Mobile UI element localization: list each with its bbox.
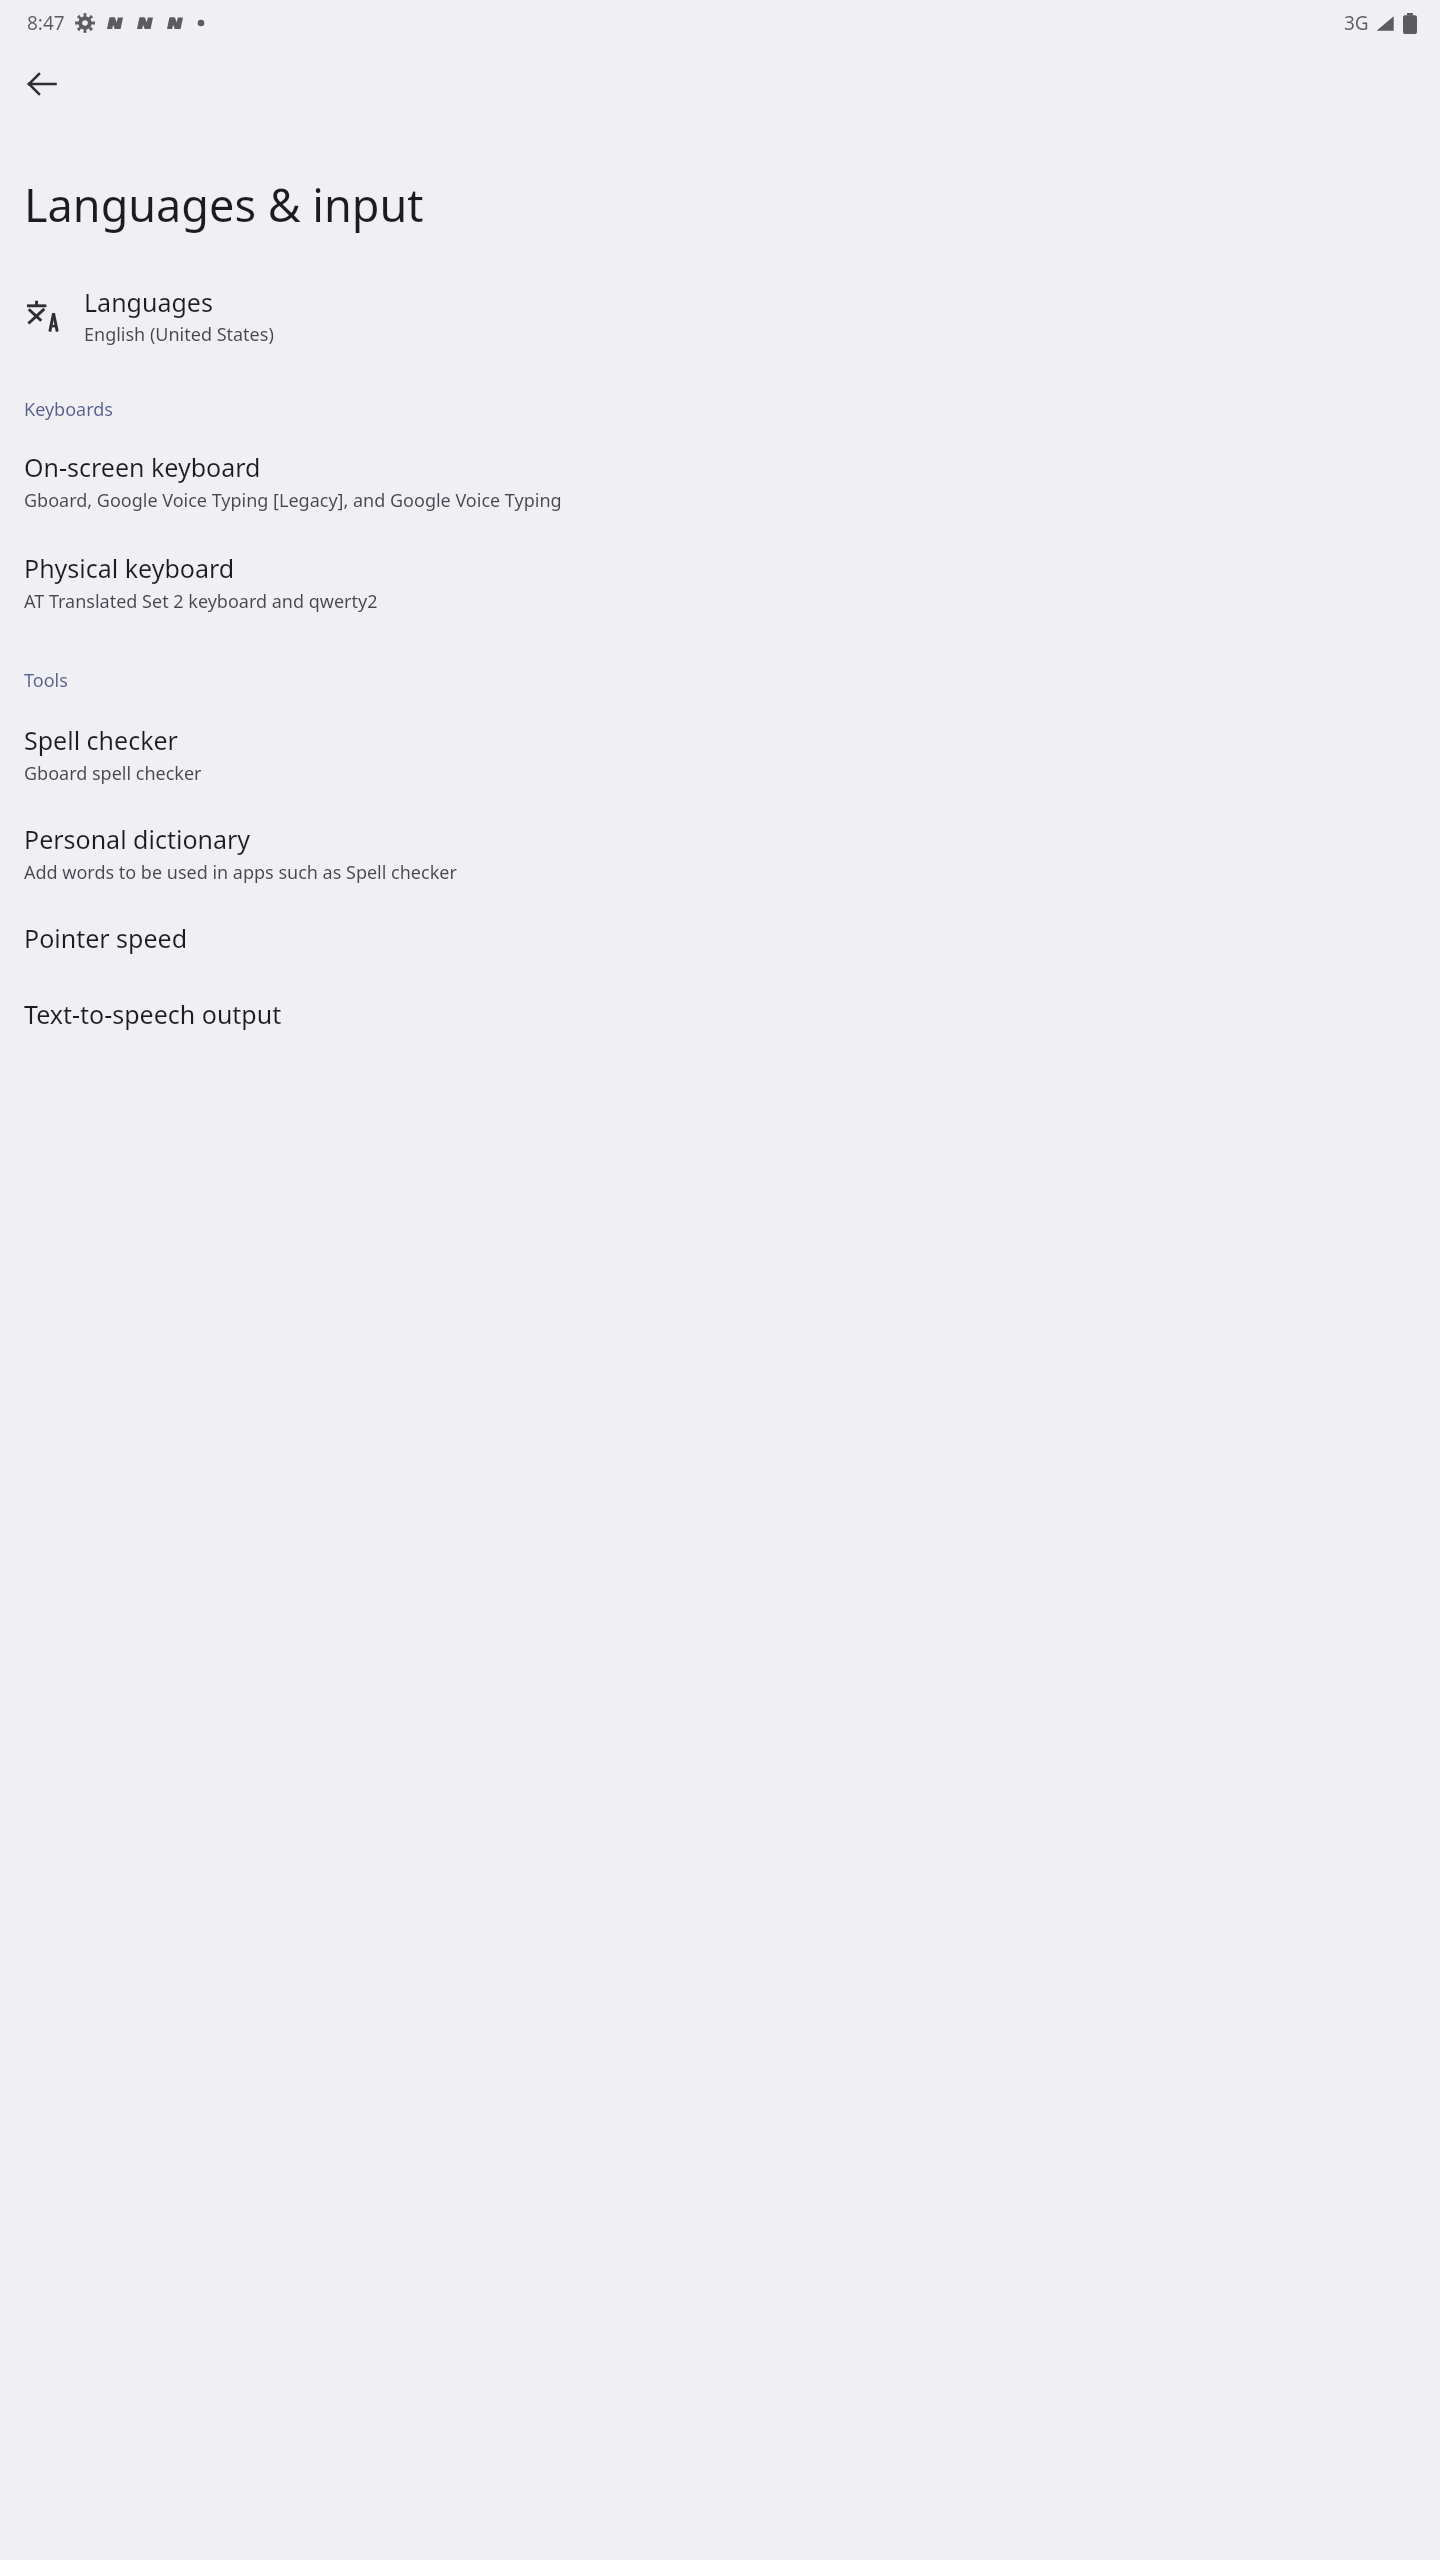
staticText: Pointer speed xyxy=(24,921,188,955)
staticText: Text-to-speech output xyxy=(24,997,282,1031)
staticText: 8:47 xyxy=(27,10,65,36)
staticText: Add words to be used in apps such as Spe… xyxy=(24,860,457,885)
staticText: Physical keyboard xyxy=(24,551,235,585)
staticText: Languages & input xyxy=(24,174,424,235)
staticText: Gboard spell checker xyxy=(24,761,202,786)
staticText: AT Translated Set 2 keyboard and qwerty2 xyxy=(24,589,378,614)
button[interactable]: Spell checker xyxy=(0,721,1440,788)
button[interactable]: Physical keyboard xyxy=(0,549,1440,616)
staticText: English (United States) xyxy=(84,322,274,347)
staticText: Keyboards xyxy=(24,397,113,422)
staticText: Personal dictionary xyxy=(24,822,251,856)
button[interactable]: Personal dictionary xyxy=(0,820,1440,887)
button[interactable]: Pointer speed xyxy=(0,919,1440,957)
button[interactable]: Back xyxy=(14,56,70,112)
staticText: On-screen keyboard xyxy=(24,450,261,484)
button[interactable]: On-screen keyboard xyxy=(0,448,1440,515)
button[interactable]: Text-to-speech output xyxy=(0,995,1440,1033)
staticText: Spell checker xyxy=(24,723,178,757)
staticText: 3G xyxy=(1344,10,1369,36)
staticText: Tools xyxy=(24,668,68,693)
button[interactable]: Languages xyxy=(0,281,1440,351)
staticText: Languages xyxy=(84,285,213,319)
staticText: Gboard, Google Voice Typing [Legacy], an… xyxy=(24,488,562,513)
